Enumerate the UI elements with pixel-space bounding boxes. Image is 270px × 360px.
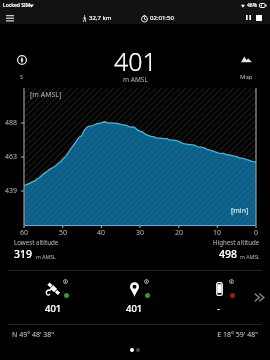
- button[interactable]: More: [249, 275, 270, 319]
- staticText: 60: [14, 228, 34, 238]
- button[interactable]: Stop: [252, 11, 265, 24]
- staticText: 0: [246, 228, 266, 238]
- staticText: 319: [14, 247, 33, 261]
- staticText: Highest altitude: [213, 238, 260, 246]
- staticText: N 49° 48' 38": [12, 330, 55, 340]
- staticText: Map: [240, 73, 253, 81]
- staticText: S: [20, 73, 24, 81]
- staticText: 10: [207, 228, 227, 238]
- staticText: 401: [114, 44, 157, 78]
- button[interactable]: Pause: [242, 11, 255, 24]
- staticText: m AMSL: [123, 75, 148, 84]
- staticText: 498: [219, 247, 238, 261]
- staticText: E 18° 59' 48": [150, 330, 258, 340]
- button[interactable]: Location: [101, 276, 184, 316]
- staticText: 488: [5, 118, 18, 128]
- staticText: 30: [130, 228, 150, 238]
- staticText: -: [217, 302, 221, 315]
- staticText: 02:01:50: [150, 14, 174, 22]
- staticText: 50: [53, 228, 73, 238]
- staticText: 46%: [247, 2, 257, 9]
- button[interactable]: Map: [232, 40, 260, 84]
- button[interactable]: Satellite: [20, 276, 103, 316]
- staticText: Locked SIM: [3, 2, 31, 9]
- staticText: Lowest altitude: [14, 238, 59, 246]
- button[interactable]: Menu: [0, 11, 20, 24]
- staticText: 439: [5, 186, 18, 196]
- staticText: 401: [45, 302, 62, 315]
- staticText: 32,7 km: [89, 14, 112, 22]
- staticText: m AMSL: [240, 253, 260, 260]
- staticText: 463: [5, 152, 18, 162]
- staticText: 40: [91, 228, 111, 238]
- button[interactable]: Compass: [8, 40, 36, 84]
- staticText: m AMSL: [36, 253, 56, 260]
- staticText: [min]: [231, 206, 249, 216]
- staticText: [m AMSL]: [30, 90, 62, 100]
- staticText: 401: [126, 302, 143, 315]
- button[interactable]: Device: [186, 276, 269, 316]
- staticText: 20: [169, 228, 189, 238]
